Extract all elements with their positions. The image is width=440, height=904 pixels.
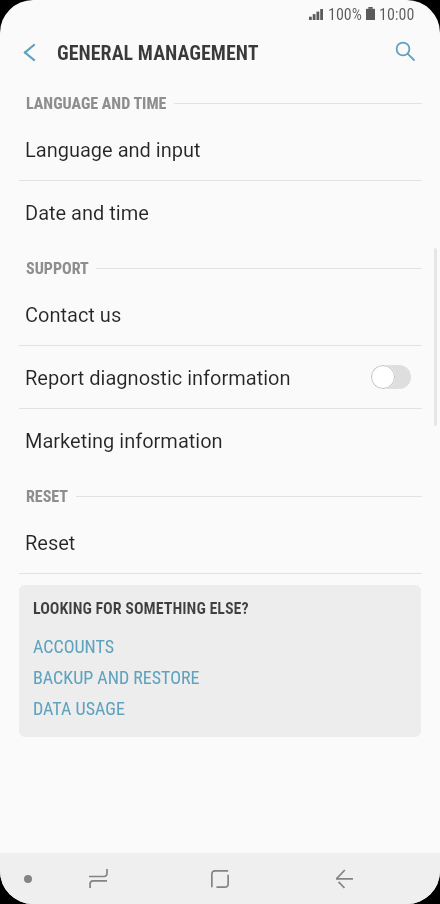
- staticText: DATA USAGE: [33, 698, 125, 719]
- staticText: Language and input: [25, 138, 201, 161]
- button[interactable]: Contact us: [0, 283, 440, 345]
- button[interactable]: ACCOUNTS: [33, 631, 407, 662]
- button[interactable]: Report diagnostic information: [0, 346, 440, 408]
- staticText: GENERAL MANAGEMENT: [57, 41, 259, 64]
- staticText: ACCOUNTS: [33, 636, 115, 657]
- button[interactable]: Search: [379, 25, 431, 77]
- staticText: Date and time: [25, 201, 149, 224]
- staticText: Report diagnostic information: [25, 366, 291, 389]
- staticText: SUPPORT: [26, 259, 89, 278]
- button[interactable]: Recent apps: [2, 853, 54, 904]
- staticText: LOOKING FOR SOMETHING ELSE?: [33, 599, 249, 618]
- button[interactable]: Recent apps: [72, 853, 124, 904]
- button[interactable]: BACKUP AND RESTORE: [33, 662, 407, 693]
- staticText: Contact us: [25, 303, 122, 326]
- button[interactable]: Marketing information: [0, 409, 440, 471]
- staticText: Marketing information: [25, 429, 223, 452]
- staticText: 10:00: [379, 5, 415, 24]
- staticText: 100%: [328, 5, 362, 24]
- button[interactable]: Date and time: [0, 181, 440, 243]
- button[interactable]: DATA USAGE: [33, 693, 407, 724]
- button[interactable]: Navigate up: [3, 26, 55, 78]
- staticText: LANGUAGE AND TIME: [26, 94, 167, 113]
- button[interactable]: Language and input: [0, 118, 440, 180]
- staticText: Reset: [25, 531, 76, 554]
- button[interactable]: Home: [194, 853, 246, 904]
- button[interactable]: Report diagnostic information toggle: [371, 365, 411, 389]
- button[interactable]: Back: [318, 853, 370, 904]
- staticText: BACKUP AND RESTORE: [33, 667, 200, 688]
- staticText: RESET: [26, 487, 69, 506]
- button[interactable]: Reset: [0, 511, 440, 573]
